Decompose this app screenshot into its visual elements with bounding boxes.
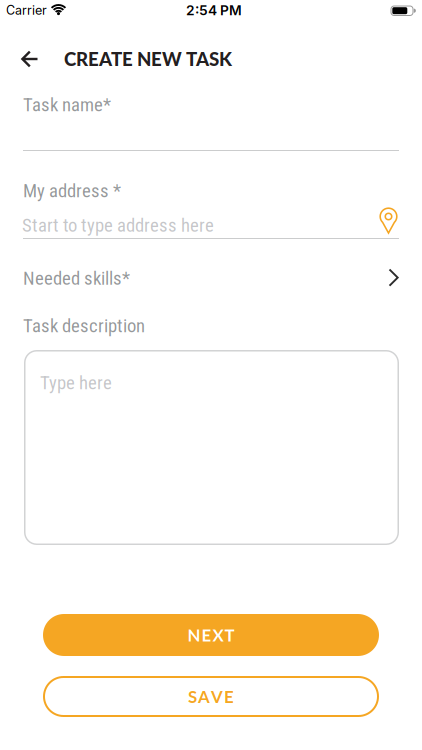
button[interactable]: Back bbox=[8, 39, 52, 79]
button[interactable]: S A V E bbox=[43, 676, 379, 717]
staticText: N E X T bbox=[187, 625, 234, 645]
staticText: Task name* bbox=[23, 94, 111, 116]
staticText: CREATE NEW TASK bbox=[64, 47, 232, 70]
staticText: Carrier bbox=[6, 2, 47, 18]
button[interactable]: Needed skills* bbox=[23, 263, 399, 293]
staticText: S A V E bbox=[188, 686, 234, 707]
staticText: My address * bbox=[23, 180, 121, 202]
staticText: 2:54 PM bbox=[186, 2, 242, 19]
button[interactable]: Pick address on map bbox=[369, 200, 409, 240]
staticText: Start to type address here bbox=[22, 214, 214, 236]
staticText: Type here bbox=[40, 372, 112, 394]
staticText: Task description bbox=[23, 315, 145, 337]
button[interactable]: N E X T bbox=[43, 614, 379, 656]
staticText: Needed skills* bbox=[23, 267, 130, 289]
